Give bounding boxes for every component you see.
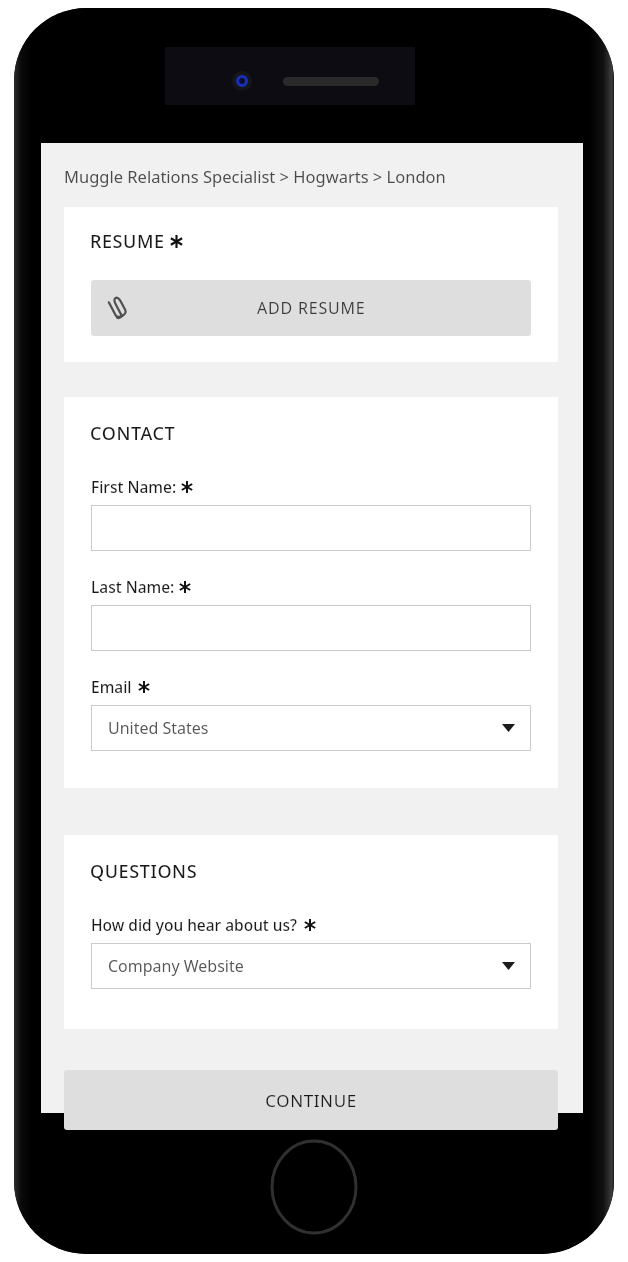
staticText: First Name:: [91, 476, 177, 497]
button[interactable]: CONTINUE: [64, 1070, 558, 1130]
other: Attach resume: [105, 295, 131, 321]
button[interactable]: [91, 505, 531, 551]
staticText: CONTACT: [90, 421, 176, 446]
staticText: Email: [91, 676, 132, 697]
button[interactable]: [91, 605, 531, 651]
button[interactable]: ADD RESUME: [91, 280, 531, 336]
staticText: QUESTIONS: [90, 859, 198, 884]
staticText: United States: [108, 717, 209, 739]
staticText: Muggle Relations Specialist > Hogwarts >…: [64, 165, 446, 187]
button[interactable]: Company Website: [91, 943, 531, 989]
staticText: How did you hear about us?: [91, 914, 298, 935]
staticText: Last Name:: [91, 576, 175, 597]
staticText: ADD RESUME: [257, 297, 366, 319]
staticText: RESUME: [90, 229, 165, 254]
button[interactable]: United States: [91, 705, 531, 751]
staticText: CONTINUE: [265, 1089, 357, 1112]
staticText: Company Website: [108, 955, 244, 977]
